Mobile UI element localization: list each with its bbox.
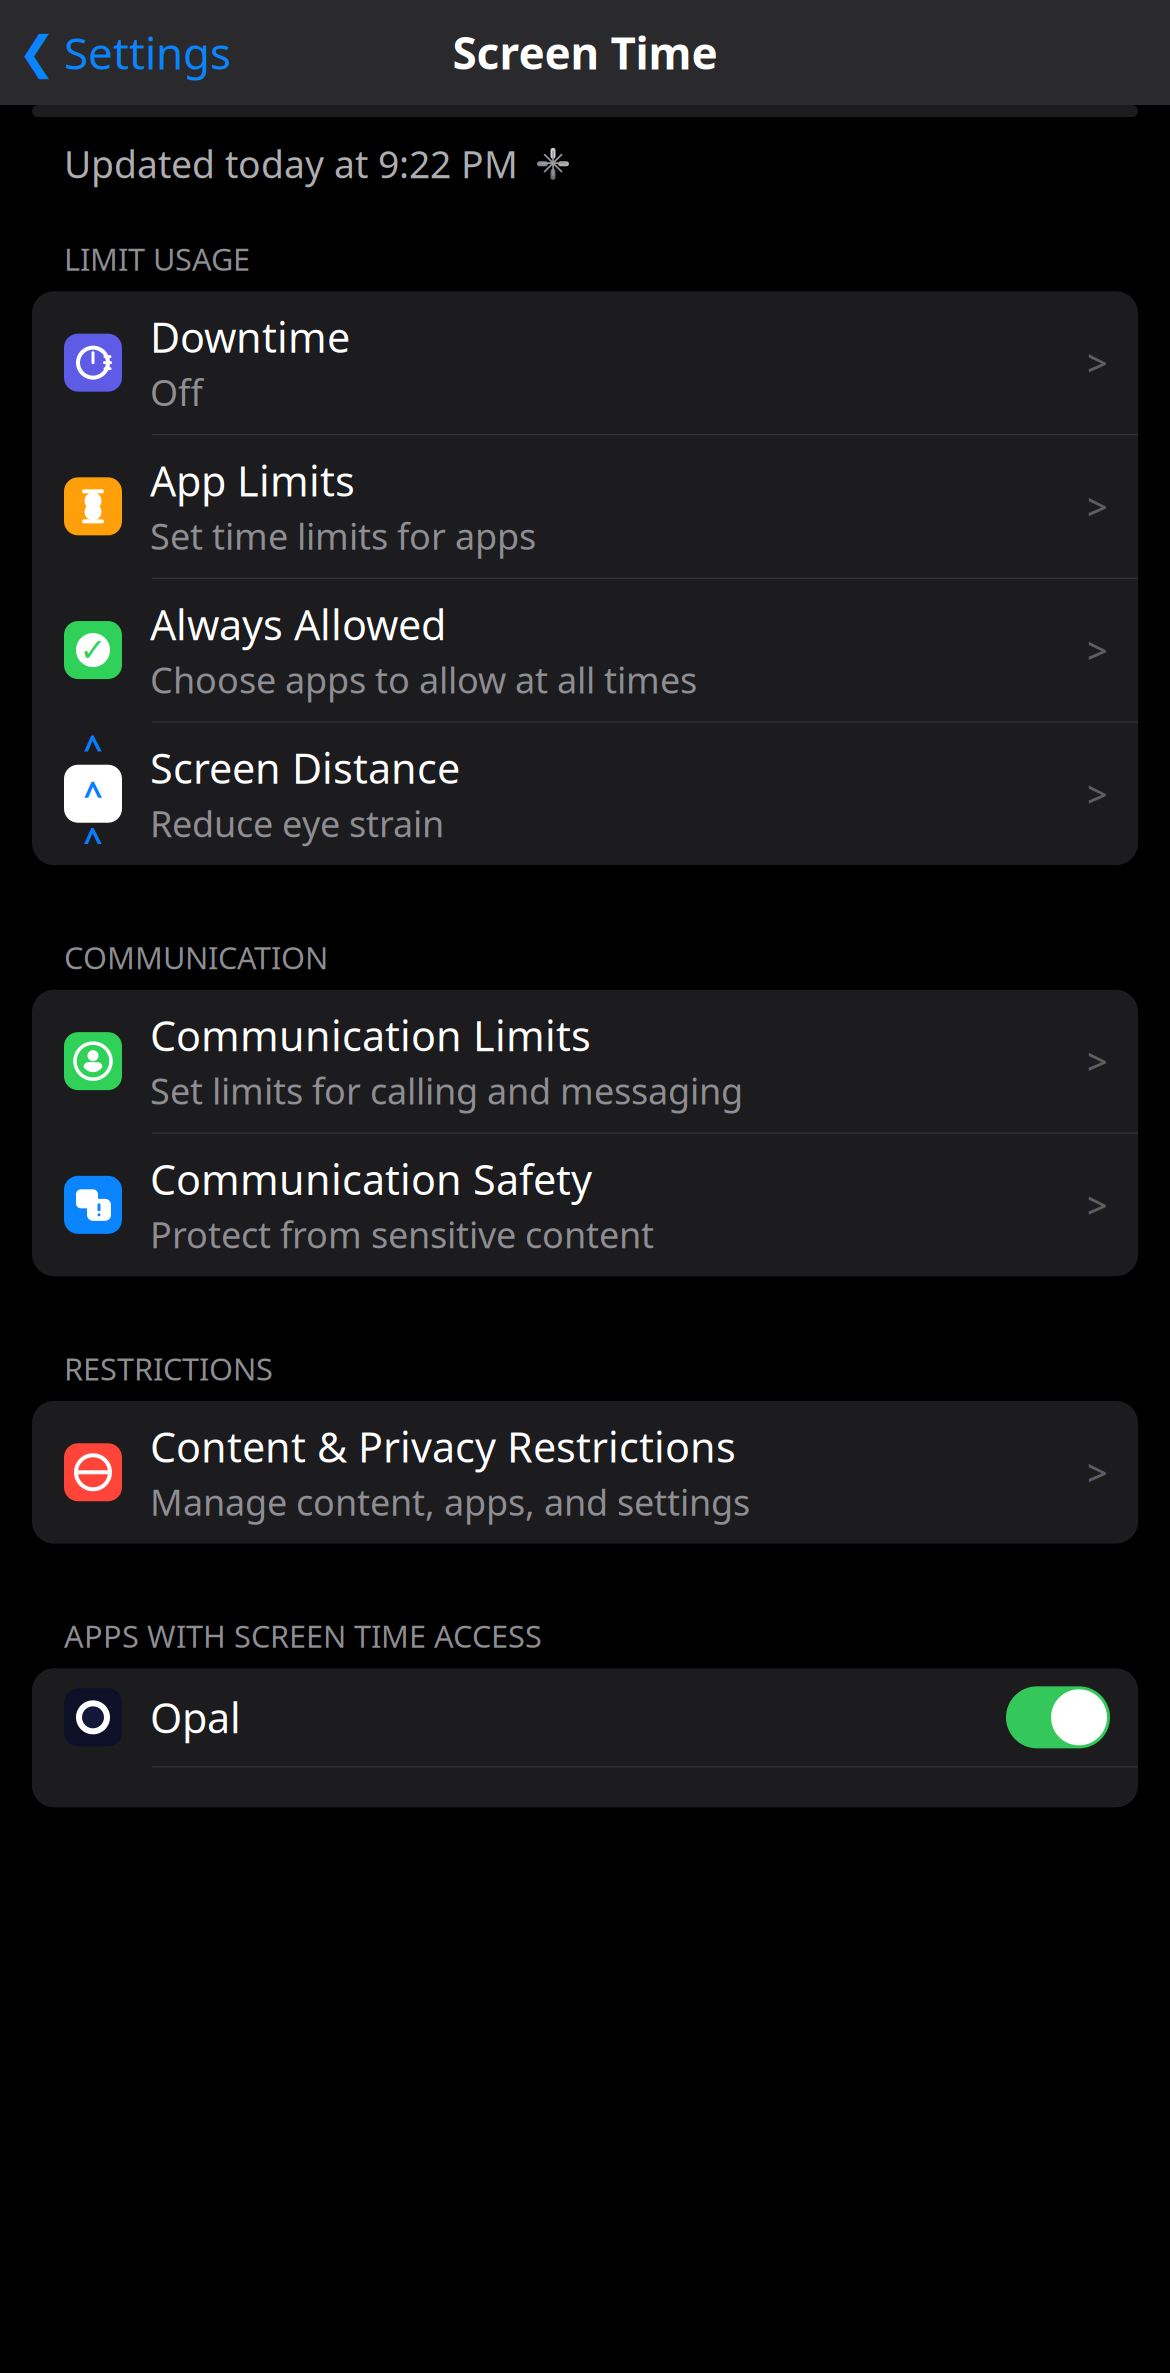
button[interactable]: Opal Screen Time access bbox=[1006, 1686, 1110, 1748]
button[interactable]: Downtime bbox=[32, 291, 1138, 434]
staticText: APPS WITH SCREEN TIME ACCESS bbox=[64, 1616, 542, 1656]
staticText: > bbox=[1087, 339, 1108, 386]
button[interactable]: Communication Limits bbox=[32, 990, 1138, 1132]
staticText: ^ bbox=[83, 818, 102, 862]
staticText: LIMIT USAGE bbox=[64, 239, 250, 279]
staticText: Opal bbox=[150, 1690, 241, 1745]
staticText: > bbox=[1087, 482, 1108, 530]
staticText: > bbox=[1087, 1448, 1108, 1496]
staticText: Communication Safety bbox=[150, 1151, 592, 1206]
staticText: ^ bbox=[83, 725, 102, 770]
button[interactable]: Communication Safety bbox=[32, 1133, 1138, 1276]
staticText: Screen Distance bbox=[150, 740, 460, 795]
staticText: > bbox=[1087, 626, 1108, 674]
button[interactable]: ^ bbox=[32, 722, 1138, 865]
staticText: > bbox=[1087, 1181, 1108, 1229]
staticText: Choose apps to allow at all times bbox=[150, 656, 697, 703]
staticText: ^ bbox=[83, 772, 102, 816]
staticText: Content & Privacy Restrictions bbox=[150, 1419, 736, 1474]
staticText: App Limits bbox=[150, 453, 355, 508]
staticText: Communication Limits bbox=[150, 1008, 591, 1063]
staticText: > bbox=[1087, 1037, 1108, 1085]
staticText: Reduce eye strain bbox=[150, 799, 444, 847]
staticText: Off bbox=[150, 368, 203, 416]
staticText: Settings bbox=[64, 23, 231, 82]
staticText: ✳ bbox=[538, 144, 567, 183]
staticText: Manage content, apps, and settings bbox=[150, 1478, 750, 1526]
button[interactable]: Opal bbox=[32, 1668, 1138, 1766]
button[interactable]: ✓ bbox=[32, 579, 1138, 721]
staticText: RESTRICTIONS bbox=[64, 1348, 273, 1389]
button[interactable]: App Limits bbox=[32, 435, 1138, 578]
staticText: Always Allowed bbox=[150, 597, 446, 652]
staticText: ❮ bbox=[18, 27, 56, 78]
staticText: Downtime bbox=[150, 309, 350, 364]
staticText: Screen Time bbox=[452, 23, 717, 82]
staticText: Updated today at 9:22 PM bbox=[64, 139, 518, 189]
staticText: Set limits for calling and messaging bbox=[150, 1067, 743, 1114]
staticText: ✓ bbox=[79, 632, 106, 668]
staticText: COMMUNICATION bbox=[64, 937, 328, 978]
staticText: Protect from sensitive content bbox=[150, 1210, 654, 1258]
button[interactable]: ❮ bbox=[0, 13, 231, 92]
staticText: Set time limits for apps bbox=[150, 512, 536, 560]
button[interactable]: Content & Privacy Restrictions bbox=[32, 1401, 1138, 1544]
staticText: > bbox=[1087, 770, 1108, 818]
